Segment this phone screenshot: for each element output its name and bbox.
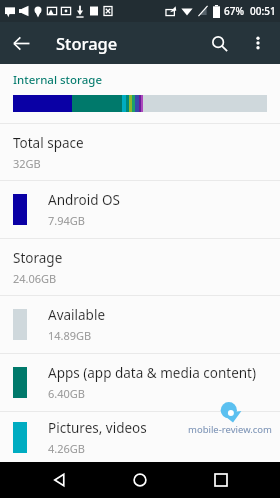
staticText: Pictures, videos — [48, 419, 147, 437]
staticText: 00:51 — [250, 4, 276, 18]
button[interactable]: Pictures, videos — [0, 412, 280, 462]
staticText: 4.26GB — [48, 441, 85, 456]
button[interactable]: Storage — [0, 239, 280, 295]
button[interactable]: Recent apps — [199, 462, 243, 498]
staticText: Internal storage — [13, 72, 102, 88]
staticText: 7.94GB — [48, 213, 85, 228]
staticText: Available — [48, 306, 105, 324]
button[interactable]: Back — [0, 22, 42, 64]
button[interactable]: Back — [37, 462, 81, 498]
staticText: 32GB — [13, 156, 41, 171]
staticText: Total space — [13, 134, 84, 152]
staticText: Android OS — [48, 191, 120, 209]
staticText: Apps (app data & media content) — [48, 364, 257, 382]
button[interactable]: Search — [198, 22, 240, 64]
button[interactable]: Android OS — [0, 181, 280, 238]
staticText: 6.40GB — [48, 386, 85, 401]
staticText: Storage — [56, 32, 118, 54]
button[interactable]: Available — [0, 296, 280, 353]
staticText: 14.89GB — [48, 328, 92, 343]
button[interactable]: Apps (app data & media content) — [0, 354, 280, 411]
staticText: Storage — [13, 249, 63, 267]
button[interactable]: Home — [118, 462, 162, 498]
staticText: 67% — [224, 4, 244, 18]
staticText: mobile-review.com — [188, 423, 272, 436]
button[interactable]: More options — [240, 25, 276, 61]
staticText: 24.06GB — [13, 271, 57, 286]
button[interactable]: Total space — [0, 124, 280, 180]
